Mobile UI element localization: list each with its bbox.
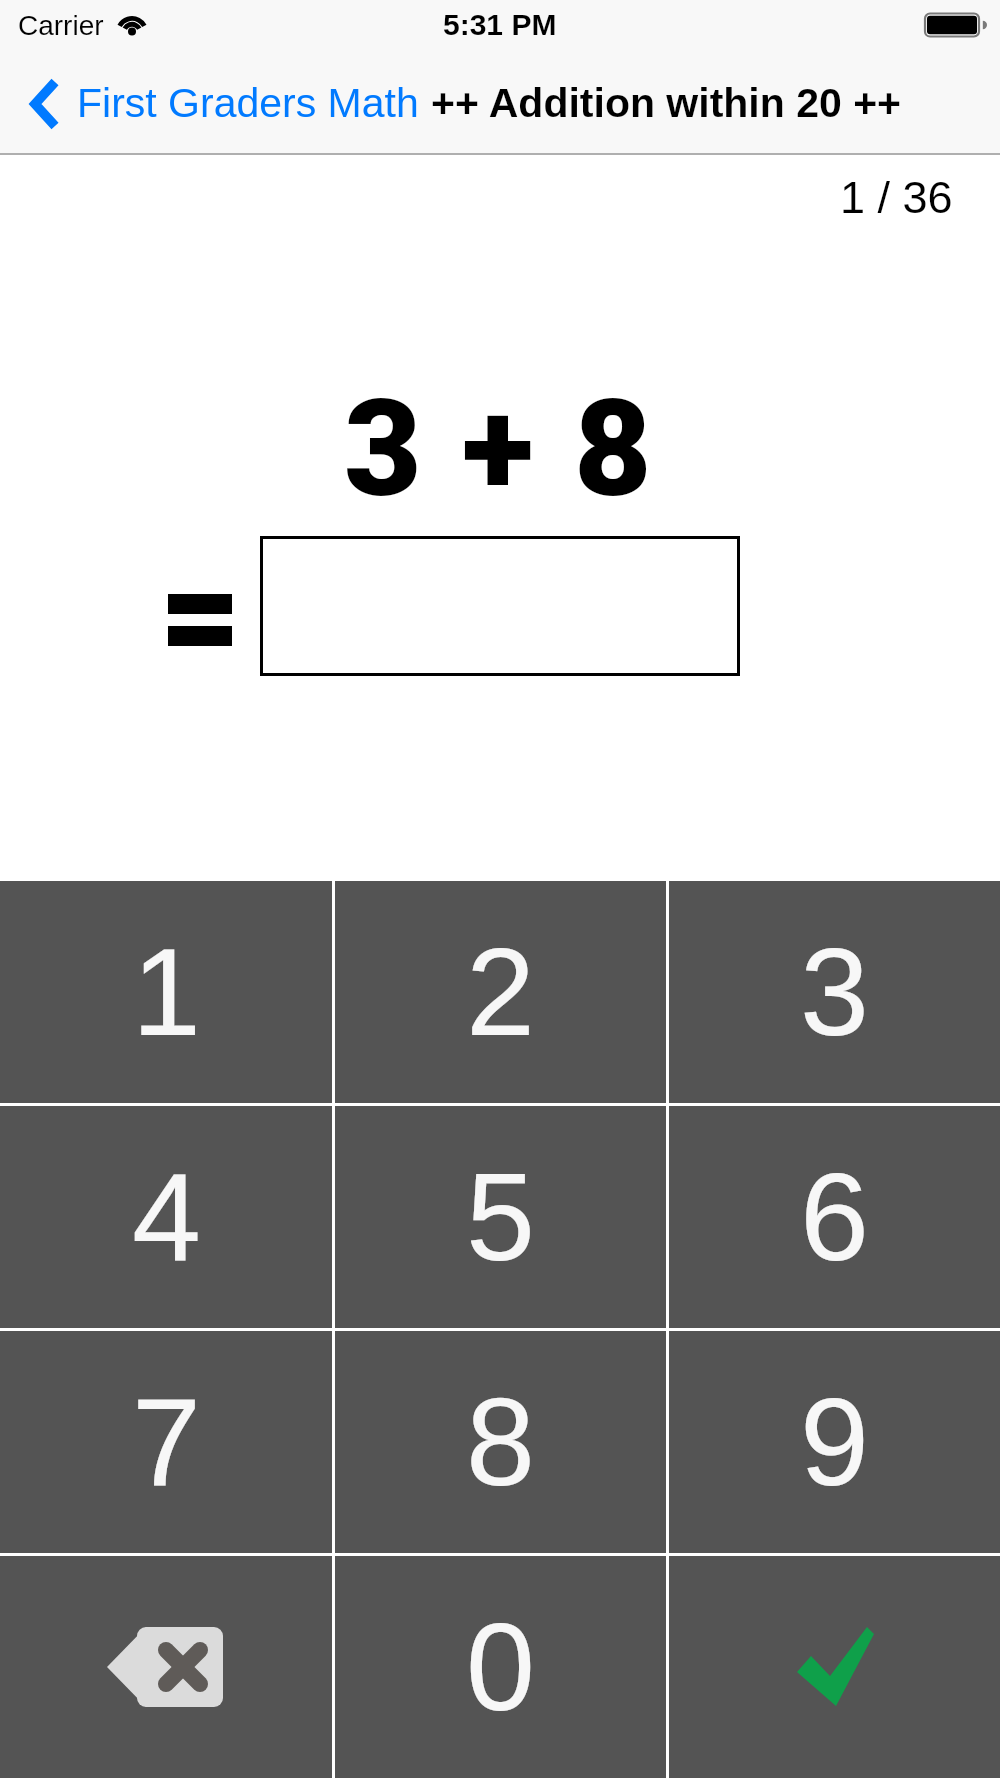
staticText: 6 [800, 1148, 869, 1287]
button[interactable]: 1 [0, 881, 332, 1103]
staticText: 3 + 8 [344, 371, 656, 528]
staticText: 5:31 PM [443, 8, 557, 42]
button[interactable]: 6 [669, 1106, 1000, 1328]
button[interactable]: 4 [0, 1106, 332, 1328]
button[interactable] [260, 536, 740, 676]
button[interactable] [0, 1556, 332, 1778]
button[interactable]: 9 [669, 1331, 1000, 1553]
button[interactable]: 3 [669, 881, 1000, 1103]
staticText: 0 [466, 1598, 535, 1737]
staticText: 4 [132, 1148, 201, 1287]
button[interactable]: First Graders Math [77, 80, 419, 126]
button[interactable]: 7 [0, 1331, 332, 1553]
staticText: First Graders Math [77, 80, 419, 126]
staticText: 5 [466, 1148, 535, 1287]
staticText: 1 [132, 923, 201, 1062]
button[interactable]: 2 [335, 881, 666, 1103]
button[interactable] [669, 1556, 1000, 1778]
staticText: 9 [800, 1373, 869, 1512]
staticText: 1 / 36 [840, 172, 953, 222]
staticText: Carrier [18, 10, 104, 41]
staticText: 8 [466, 1373, 535, 1512]
staticText: 3 [800, 923, 869, 1062]
button[interactable]: 0 [335, 1556, 666, 1778]
staticText: 7 [132, 1373, 201, 1512]
staticText: 2 [466, 923, 535, 1062]
button[interactable]: 8 [335, 1331, 666, 1553]
button[interactable]: 5 [335, 1106, 666, 1328]
button[interactable] [31, 78, 59, 130]
staticText: ++ Addition within 20 ++ [431, 80, 902, 126]
